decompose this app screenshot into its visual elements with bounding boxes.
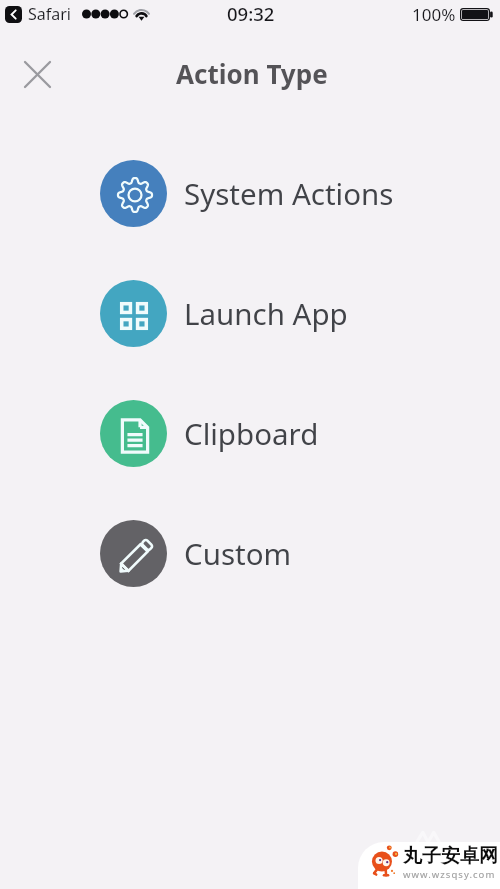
staticText: 丸子安卓网: [403, 844, 498, 868]
staticText: 100%: [412, 3, 456, 26]
button[interactable]: Launch App: [0, 280, 500, 347]
button[interactable]: Close: [13, 50, 61, 98]
staticText: Clipboard: [184, 413, 319, 453]
button[interactable]: System Actions: [0, 160, 500, 227]
button[interactable]: Clipboard: [0, 400, 500, 467]
staticText: Custom: [184, 533, 292, 573]
staticText: www.wzsqsy.com: [403, 868, 496, 881]
staticText: System Actions: [184, 173, 394, 213]
staticText: 09:32: [227, 1, 275, 26]
staticText: Action Type: [176, 56, 328, 91]
staticText: Launch App: [184, 293, 348, 333]
staticText: Safari: [28, 3, 71, 25]
button[interactable]: Custom: [0, 520, 500, 587]
